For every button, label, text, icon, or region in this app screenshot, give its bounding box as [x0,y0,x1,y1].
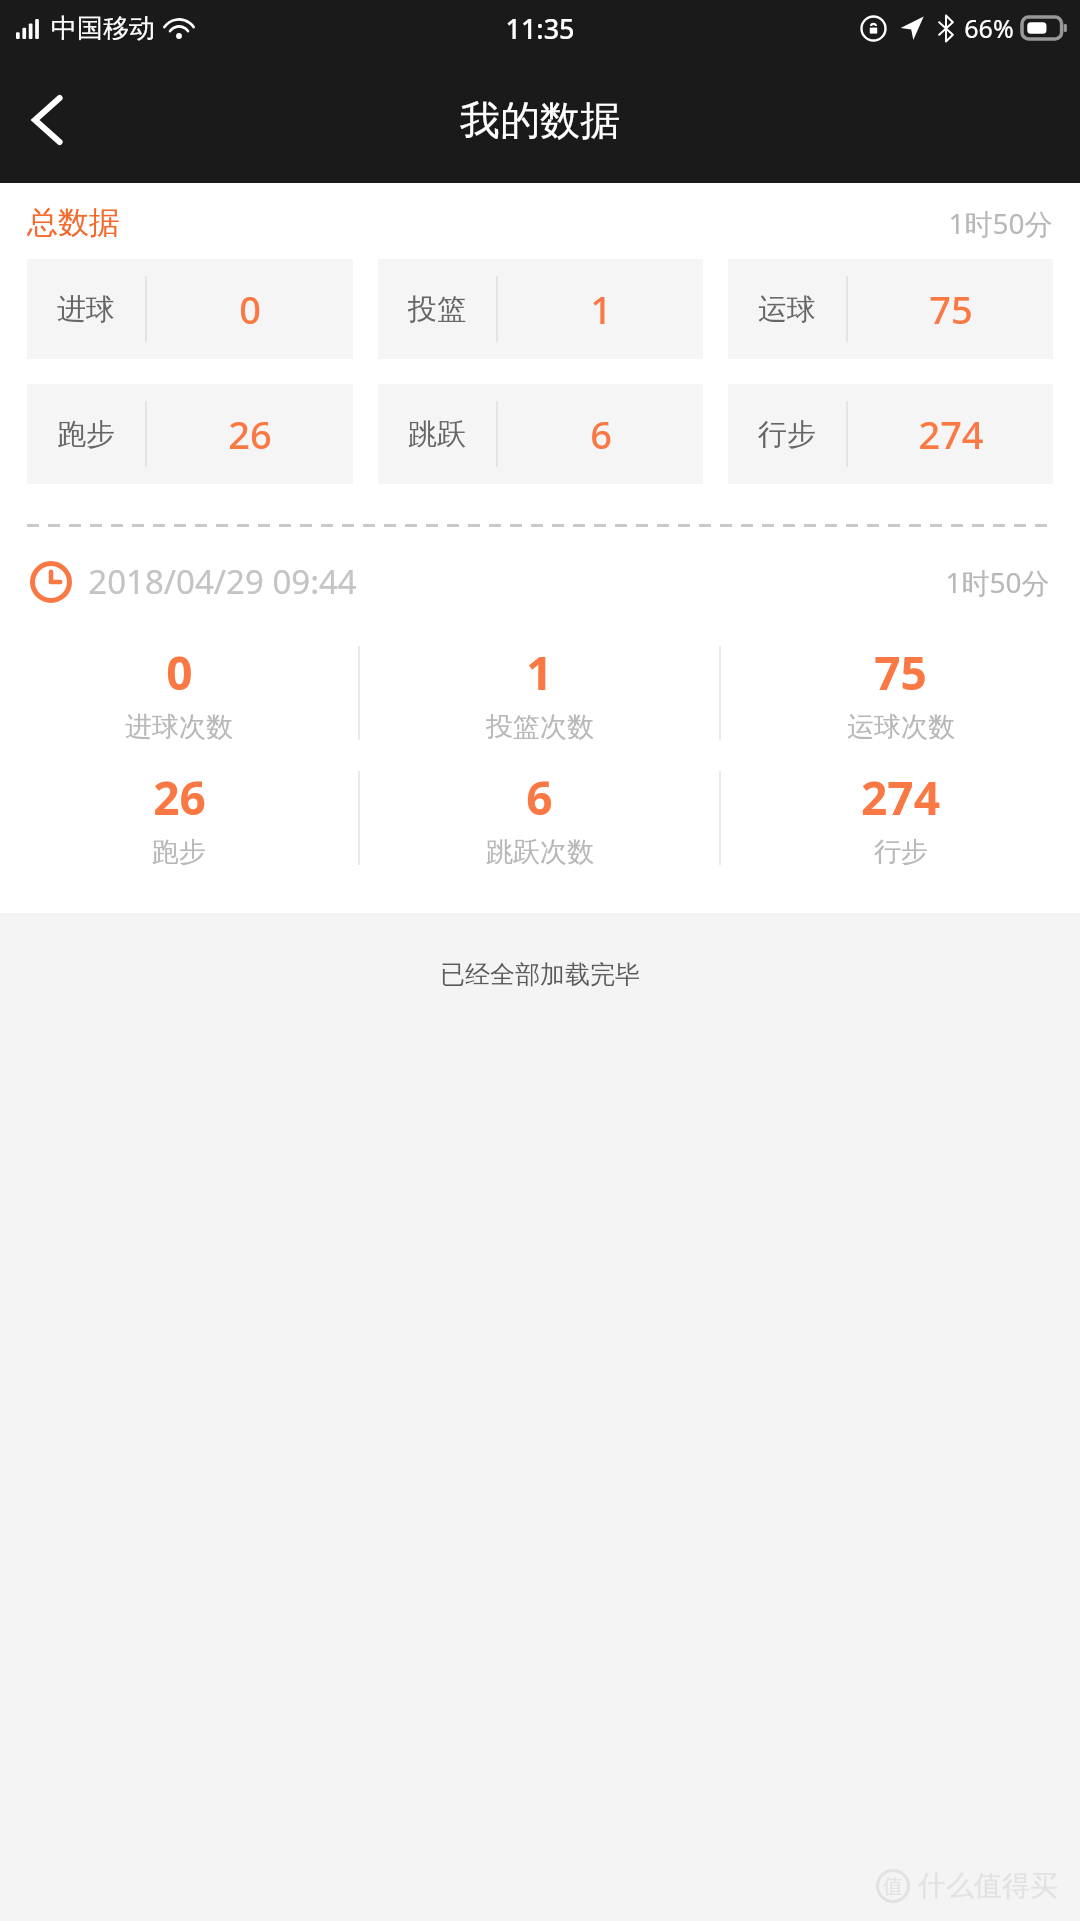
staticText: 66% [964,11,1014,45]
button[interactable]: 投篮 [378,259,703,359]
button[interactable]: 75 [721,641,1080,744]
button[interactable]: 进球 [27,259,353,359]
staticText: 投篮次数 [486,710,594,744]
staticText: 26 [153,766,206,829]
staticText: 26 [228,408,272,460]
button[interactable]: 跑步 [27,384,353,484]
button[interactable]: 行步 [728,384,1053,484]
staticText: 什么值得买 [918,1868,1058,1903]
staticText: 已经全部加载完毕 [440,959,640,990]
button[interactable]: 运球 [728,259,1053,359]
button[interactable]: 1 [360,641,719,744]
staticText: 274 [918,408,984,460]
staticText: 6 [526,766,553,829]
staticText: 1 [590,283,612,335]
button[interactable]: 274 [721,766,1080,869]
staticText: 跳跃次数 [486,835,594,869]
staticText: 运球 [758,291,816,328]
staticText: 1时50分 [945,563,1050,601]
staticText: 行步 [758,416,816,453]
staticText: 进球 [57,291,115,328]
button[interactable]: 6 [360,766,719,869]
staticText: 行步 [874,835,928,869]
staticText: 中国移动 [51,12,155,45]
staticText: 进球次数 [125,710,233,744]
staticText: 我的数据 [460,95,620,145]
button[interactable]: Back [8,81,86,159]
staticText: 0 [166,641,193,704]
staticText: 运球次数 [847,710,955,744]
staticText: 跑步 [57,416,115,453]
staticText: 6 [590,408,612,460]
staticText: 跳跃 [408,416,466,453]
staticText: 总数据 [27,203,120,242]
staticText: 跑步 [152,835,206,869]
staticText: 值 [883,1874,903,1899]
staticText: 11:35 [505,10,575,47]
staticText: 0 [239,283,261,335]
staticText: 274 [861,766,940,829]
staticText: 75 [929,283,973,335]
staticText: 1 [526,641,553,704]
staticText: 1时50分 [948,204,1053,242]
staticText: 75 [874,641,927,704]
button[interactable]: 26 [0,766,358,869]
staticText: 投篮 [408,291,466,328]
staticText: 2018/04/29 09:44 [88,559,357,604]
button[interactable]: 跳跃 [378,384,703,484]
button[interactable]: 0 [0,641,358,744]
